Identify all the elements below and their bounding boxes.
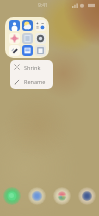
button[interactable]: Contacts: [9, 20, 20, 31]
button[interactable]: Calculator: [35, 20, 46, 31]
button[interactable]: Phone: [3, 187, 21, 205]
button[interactable]: Files: [35, 45, 46, 56]
button[interactable]: Browser: [78, 187, 96, 205]
button[interactable]: Folder: [5, 17, 49, 58]
staticText: Shrink: [24, 64, 41, 71]
button[interactable]: Weather: [22, 20, 33, 31]
button[interactable]: Notes: [9, 45, 20, 56]
button[interactable]: Device: [22, 33, 33, 44]
button[interactable]: Photos: [53, 187, 71, 205]
button[interactable]: Rename: [10, 74, 53, 89]
button[interactable]: Messages: [28, 187, 46, 205]
button[interactable]: Docs: [22, 45, 33, 56]
button[interactable]: Shrink: [10, 60, 53, 74]
staticText: Rename: [24, 78, 46, 85]
staticText: 9:41: [38, 2, 48, 9]
button[interactable]: Health: [9, 33, 20, 44]
button[interactable]: Settings: [35, 33, 46, 44]
